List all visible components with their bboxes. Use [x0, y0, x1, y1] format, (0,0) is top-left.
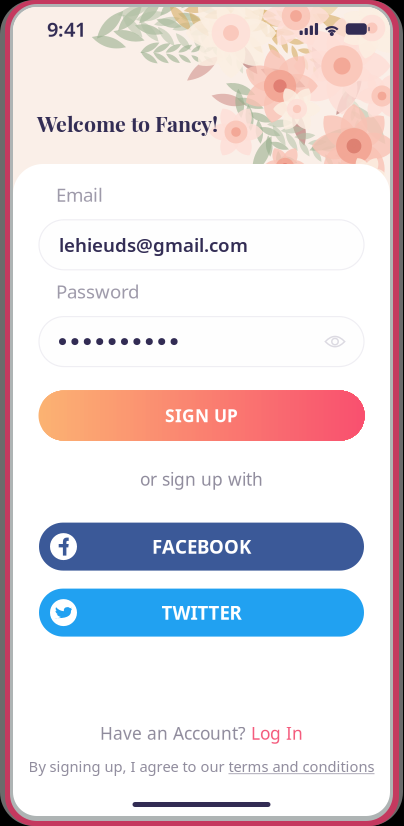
staticText: Log In: [251, 721, 303, 744]
staticText: lehieuds@gmail.com: [59, 232, 248, 257]
staticText: Email: [56, 182, 103, 207]
button[interactable]: FACEBOOK: [39, 523, 364, 571]
staticText: 9:41: [47, 16, 86, 42]
staticText: Welcome to Fancy!: [37, 109, 218, 137]
button[interactable]: Log In: [251, 721, 303, 744]
button[interactable]: Show password: [324, 334, 346, 350]
staticText: Password: [56, 279, 139, 304]
button[interactable]: TWITTER: [39, 589, 364, 637]
staticText: or sign up with: [140, 468, 263, 491]
staticText: TWITTER: [161, 600, 241, 625]
staticText: SIGN UP: [165, 404, 238, 427]
button[interactable]: SIGN UP: [38, 391, 364, 441]
staticText: FACEBOOK: [152, 534, 251, 559]
staticText: By signing up, I agree to our terms and …: [28, 756, 374, 776]
staticText: Have an Account?: [100, 721, 246, 744]
